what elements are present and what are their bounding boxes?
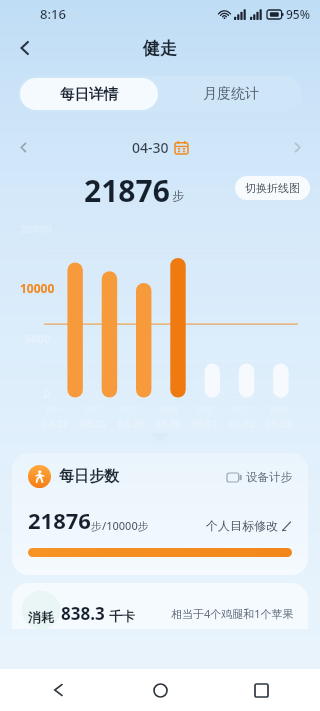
- button[interactable]: Previous day: [10, 134, 36, 160]
- button[interactable]: 个人目标修改: [206, 518, 292, 535]
- button[interactable]: 设备计步: [227, 470, 292, 484]
- staticText: 月度统计: [203, 85, 259, 103]
- staticText: 0: [44, 386, 51, 401]
- staticText: 千卡: [109, 608, 135, 624]
- button[interactable]: Back: [8, 31, 42, 65]
- button[interactable]: Calendar: [175, 141, 188, 154]
- staticText: 相当于4个鸡腿和1个苹果: [171, 606, 294, 621]
- button[interactable]: Next day: [284, 134, 310, 160]
- staticText: 切换折线图: [245, 181, 300, 195]
- staticText: 10000: [20, 280, 55, 296]
- staticText: 健走: [143, 38, 177, 59]
- staticText: 5000: [25, 331, 51, 346]
- staticText: 20000: [20, 221, 52, 236]
- button[interactable]: Recent apps: [246, 675, 276, 705]
- staticText: 步/10000步: [91, 518, 149, 533]
- button[interactable]: Back: [44, 675, 74, 705]
- button[interactable]: 每日详情: [20, 78, 158, 110]
- button[interactable]: 消耗: [12, 583, 308, 629]
- button[interactable]: Home: [145, 675, 175, 705]
- staticText: 838.3: [61, 602, 105, 625]
- staticText: 个人目标修改: [206, 518, 278, 533]
- staticText: 95%: [286, 6, 310, 22]
- staticText: 21876: [84, 170, 170, 206]
- button[interactable]: 切换折线图: [235, 176, 310, 200]
- staticText: 消耗: [28, 609, 54, 625]
- button[interactable]: 每日步数: [12, 453, 308, 575]
- staticText: 每日步数: [59, 467, 119, 486]
- staticText: 21876: [28, 505, 91, 535]
- staticText: 步: [172, 188, 184, 203]
- button[interactable]: 月度统计: [160, 76, 302, 112]
- staticText: 每日详情: [60, 85, 118, 103]
- staticText: 设备计步: [246, 470, 292, 484]
- staticText: 8:16: [40, 5, 66, 23]
- staticText: 04-30: [132, 138, 169, 157]
